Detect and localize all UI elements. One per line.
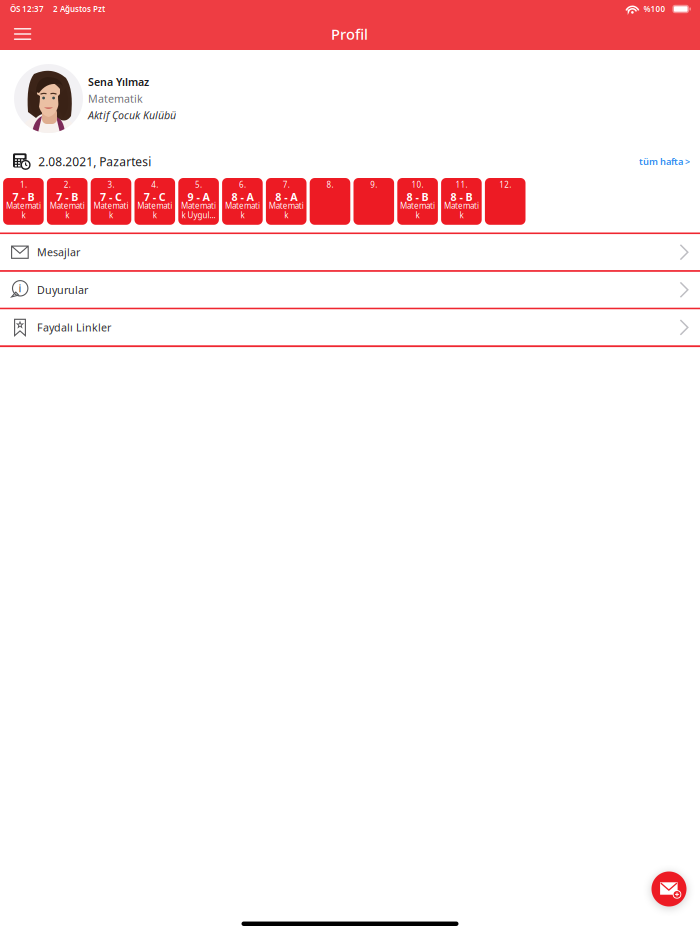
button[interactable]: 1. [3,178,44,225]
staticText: k [240,210,244,220]
button[interactable]: Menu [0,18,45,50]
staticText: Matemati [269,200,304,211]
button[interactable]: tüm hafta > [627,148,700,174]
staticText: 1. [20,179,27,190]
staticText: 7 - B [12,190,34,204]
staticText: 8. [326,179,333,190]
staticText: Matemati [50,200,85,211]
button[interactable]: 12. [485,178,525,225]
staticText: Matemati [93,200,128,211]
staticText: 2 Ağustos Pzt [53,4,105,14]
staticText: 6. [239,179,246,190]
staticText: 7 - C [144,190,166,204]
staticText: Matemati [137,200,172,211]
button[interactable]: 4. [134,178,175,225]
button[interactable]: 11. [441,178,482,225]
staticText: k [21,210,25,220]
button[interactable]: 3. [91,178,131,225]
staticText: %100 [643,4,665,14]
staticText: 5. [195,179,202,190]
button[interactable]: 10. [397,178,438,225]
staticText: 9. [370,179,377,190]
staticText: k [416,210,420,220]
button[interactable]: Faydalı Linkler [0,309,700,345]
staticText: 4. [151,179,158,190]
staticText: 9 - A [188,190,210,204]
staticText: Profil [331,24,368,44]
staticText: Matemati [6,200,41,211]
staticText: Aktif Çocuk Kulübü [88,108,176,122]
staticText: Faydalı Linkler [37,320,111,334]
staticText: 8 - B [407,190,429,204]
staticText: 10. [412,179,424,190]
staticText: 7. [283,179,290,190]
staticText: 2. [64,179,71,190]
button[interactable]: New message [651,871,686,906]
button[interactable]: Mesajlar [0,234,700,270]
staticText: Matemati [444,200,479,211]
staticText: 3. [107,179,114,190]
staticText: k [284,210,288,220]
staticText: Mesajlar [37,245,80,259]
staticText: ÖS 12:37 [10,4,44,14]
button[interactable]: 7. [266,178,306,225]
button[interactable]: 2. [47,178,87,225]
staticText: Matemati [225,200,260,211]
staticText: i [18,281,21,295]
button[interactable]: 8. [310,178,350,225]
staticText: 12. [499,179,511,190]
staticText: 2.08.2021, Pazartesi [38,153,151,169]
button[interactable]: 9. [353,178,394,225]
staticText: tüm hafta > [639,155,690,168]
staticText: 8 - A [275,190,297,204]
staticText: Duyurular [37,283,88,297]
button[interactable]: i [0,272,700,308]
staticText: k [109,210,113,220]
staticText: k [65,210,69,220]
button[interactable]: 6. [222,178,263,225]
staticText: 8 - B [450,190,472,204]
staticText: Matematik [88,91,143,106]
staticText: 8 - A [231,190,253,204]
staticText: k Uygul... [182,210,216,220]
staticText: Sena Yılmaz [88,75,149,89]
staticText: k [459,210,463,220]
staticText: k [153,210,157,220]
staticText: 11. [455,179,467,190]
staticText: Matemati [181,200,216,211]
staticText: 7 - B [56,190,78,204]
staticText: 7 - C [100,190,122,204]
staticText: Matemati [400,200,435,211]
button[interactable]: 5. [178,178,219,225]
